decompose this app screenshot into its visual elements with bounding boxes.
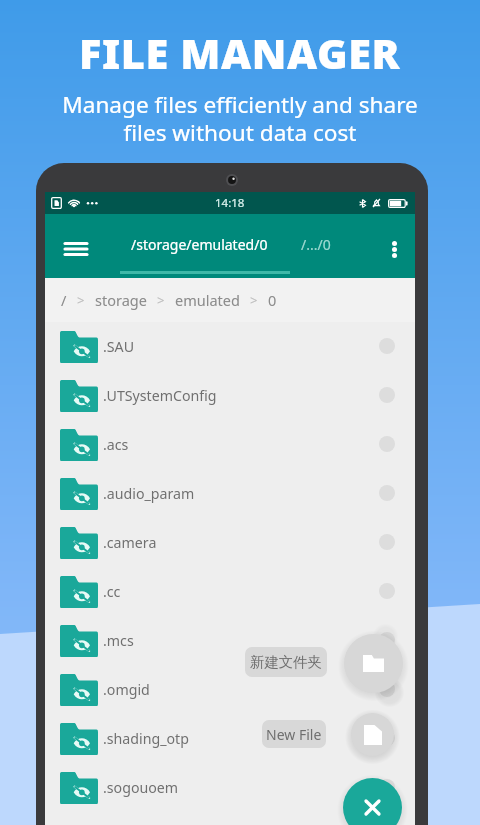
button[interactable]: emulated: [175, 290, 240, 310]
button[interactable]: .shading_otp: [45, 714, 415, 763]
staticText: .acs: [103, 435, 129, 454]
button[interactable]: /: [61, 290, 67, 310]
button[interactable]: storage: [95, 290, 147, 310]
staticText: 14:18: [215, 195, 245, 211]
staticText: >: [77, 291, 85, 309]
staticText: .omgid: [103, 680, 150, 699]
button[interactable]: .SAU: [45, 322, 415, 371]
button[interactable]: 新建文件夹: [245, 647, 327, 677]
button[interactable]: New File: [262, 720, 326, 748]
button[interactable]: .sogouoem: [45, 763, 415, 812]
staticText: .UTSystemConfig: [103, 386, 217, 405]
staticText: .shading_otp: [103, 729, 189, 748]
staticText: .audio_param: [103, 484, 195, 503]
button[interactable]: .audio_param: [45, 469, 415, 518]
staticText: .mcs: [103, 631, 134, 650]
button[interactable]: Menu: [56, 229, 96, 269]
button[interactable]: More options: [376, 231, 412, 267]
staticText: 0: [268, 290, 277, 310]
button[interactable]: .acs: [45, 420, 415, 469]
staticText: New File: [266, 725, 322, 744]
button[interactable]: .omgid: [45, 665, 415, 714]
button[interactable]: New folder: [344, 634, 403, 693]
staticText: >: [157, 291, 165, 309]
button[interactable]: New file: [351, 713, 394, 756]
staticText: .cc: [103, 582, 121, 601]
button[interactable]: .cc: [45, 567, 415, 616]
button[interactable]: .camera: [45, 518, 415, 567]
staticText: .sogouoem: [103, 778, 179, 797]
button[interactable]: .mcs: [45, 616, 415, 665]
staticText: FILE MANAGER: [79, 25, 401, 82]
staticText: /storage/emulated/0: [131, 235, 268, 254]
button[interactable]: Close menu: [343, 778, 402, 825]
button[interactable]: /storage/emulated/0: [114, 214, 285, 276]
staticText: .SAU: [103, 337, 135, 356]
staticText: 新建文件夹: [250, 653, 322, 671]
staticText: >: [250, 291, 258, 309]
button[interactable]: .UTSystemConfig: [45, 371, 415, 420]
staticText: emulated: [175, 290, 240, 310]
button[interactable]: /.../0: [280, 214, 352, 276]
staticText: storage: [95, 290, 147, 310]
staticText: /.../0: [301, 235, 331, 254]
button[interactable]: 0: [268, 290, 277, 310]
staticText: Manage files efficiently and share files…: [62, 89, 418, 147]
staticText: /: [61, 290, 67, 310]
staticText: .camera: [103, 533, 157, 552]
